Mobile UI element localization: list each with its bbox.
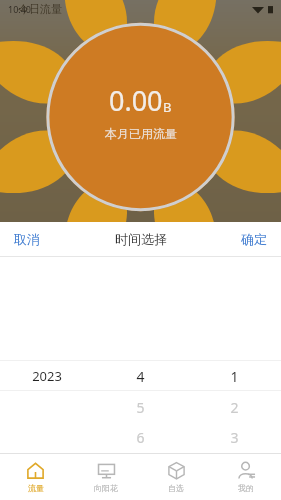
staticText: 今日流量 xyxy=(18,2,62,16)
staticText: 本月已用流量 xyxy=(105,126,177,141)
staticText: 确定 xyxy=(241,231,267,247)
staticText: 流量 xyxy=(28,483,44,493)
staticText: 时间选择 xyxy=(115,231,167,247)
staticText: 我的 xyxy=(238,483,254,493)
staticText: 1 xyxy=(230,367,239,386)
staticText: B xyxy=(163,98,172,116)
button[interactable]: 我的 xyxy=(211,454,281,500)
button[interactable]: 取消 xyxy=(0,224,54,254)
button[interactable]: 流量 xyxy=(0,454,71,500)
button[interactable]: 向阳花 xyxy=(71,454,141,500)
staticText: 向阳花 xyxy=(94,483,118,493)
button[interactable]: 自选 xyxy=(141,454,211,500)
staticText: 自选 xyxy=(168,483,184,493)
staticText: 0.00 xyxy=(109,82,163,119)
staticText: 3 xyxy=(230,428,239,447)
staticText: 4 xyxy=(136,367,145,386)
button[interactable]: 确定 xyxy=(227,224,281,254)
staticText: 2 xyxy=(230,398,239,417)
staticText: 2023 xyxy=(32,367,62,385)
staticText: 取消 xyxy=(14,231,40,247)
staticText: 6 xyxy=(136,428,145,447)
staticText: 10:40 xyxy=(8,3,32,15)
staticText: 5 xyxy=(136,398,145,417)
